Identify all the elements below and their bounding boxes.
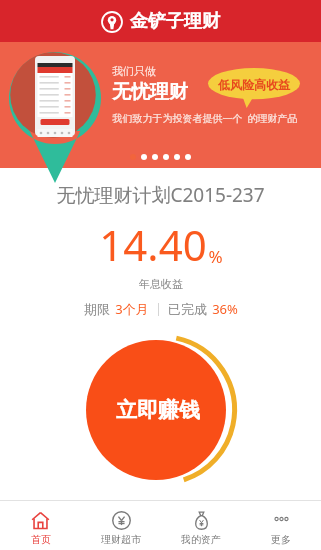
staticText: 金铲子理财	[130, 10, 220, 33]
staticText: 36%	[212, 300, 238, 318]
staticText: 立即赚钱	[116, 397, 200, 423]
button[interactable]: 首页	[0, 506, 81, 546]
staticText: 无忧理财	[112, 80, 188, 104]
staticText: 3个月	[115, 300, 149, 318]
staticText: 期限	[84, 301, 110, 317]
staticText: 理财超市	[101, 533, 141, 546]
staticText: 低风险高收益	[218, 77, 290, 92]
button[interactable]: 更多	[241, 506, 321, 546]
staticText: 我的资产	[181, 533, 221, 546]
staticText: 无忧理财计划C2015-237	[56, 182, 265, 208]
staticText: 更多	[271, 533, 291, 546]
button[interactable]: 立即赚钱	[85, 334, 237, 486]
staticText: 我们只做	[112, 64, 156, 78]
staticText: 我们致力于为投资者提供一个 的理财产品	[112, 111, 298, 125]
button[interactable]: 理财超市	[81, 506, 161, 546]
staticText: 14.40	[99, 216, 207, 273]
staticText: 已完成	[168, 301, 207, 317]
button[interactable]: 我们只做	[0, 42, 321, 168]
staticText: 年息收益	[139, 277, 183, 291]
staticText: 首页	[31, 533, 51, 546]
staticText: %	[208, 245, 223, 268]
button[interactable]: 我的资产	[161, 506, 241, 546]
